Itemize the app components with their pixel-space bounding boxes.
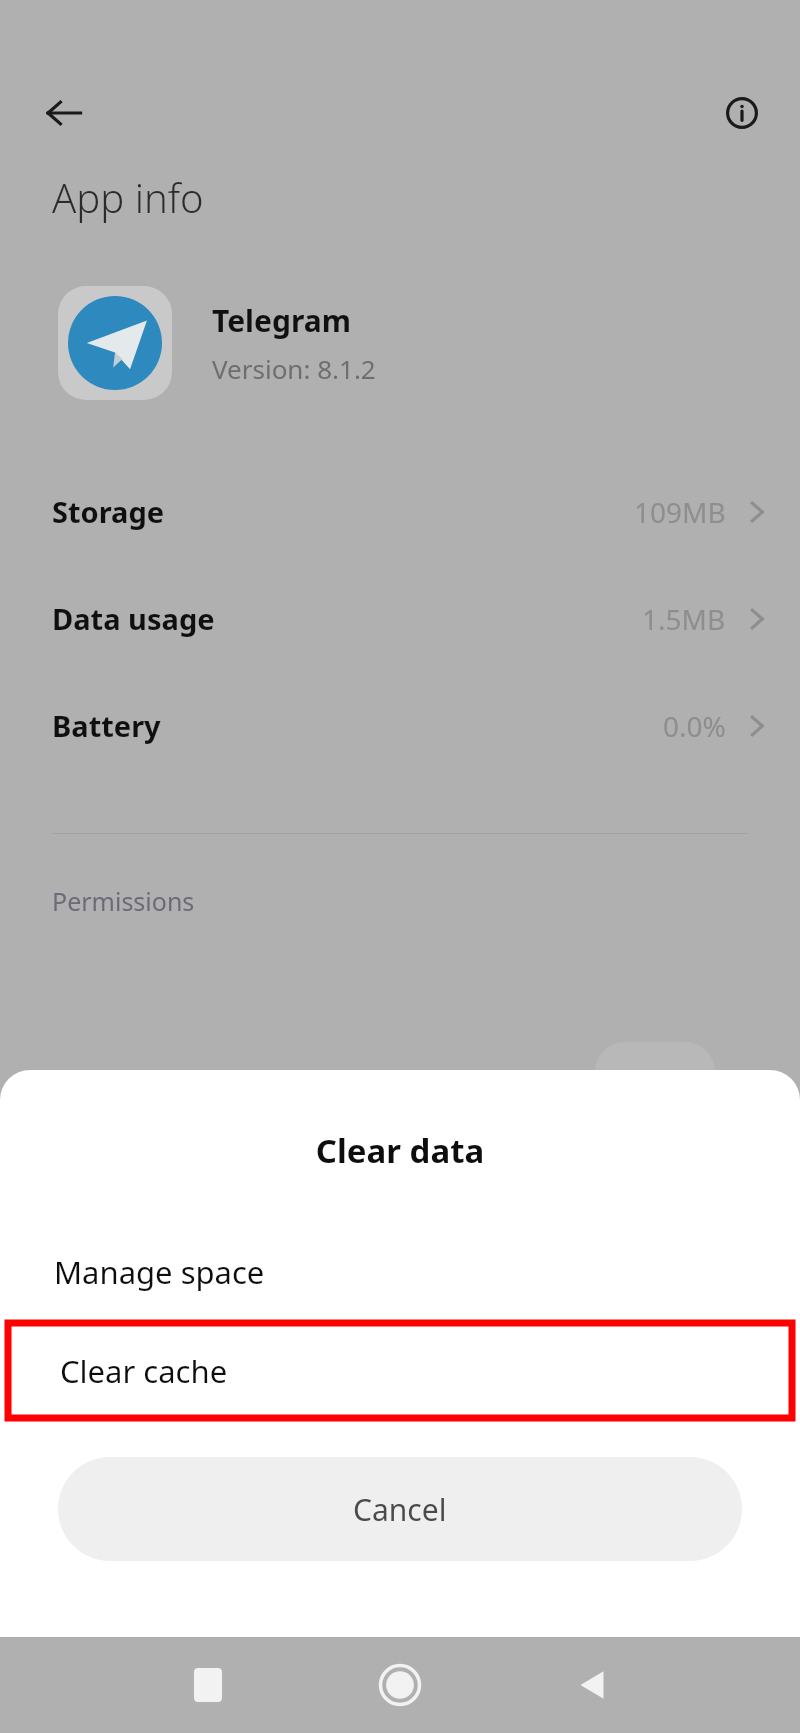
- staticText: Permissions: [52, 884, 195, 918]
- button[interactable]: Recent apps: [160, 1637, 256, 1733]
- button[interactable]: Storage: [0, 458, 800, 565]
- staticText: Cancel: [353, 1489, 447, 1530]
- staticText: Clear data: [0, 1128, 800, 1173]
- button[interactable]: Back: [544, 1637, 640, 1733]
- staticText: Version: 8.1.2: [212, 351, 376, 386]
- button[interactable]: Back: [36, 85, 92, 141]
- staticText: 109MB: [634, 493, 726, 531]
- staticText: Storage: [52, 492, 165, 531]
- staticText: 1.5MB: [642, 600, 726, 638]
- staticText: Data usage: [52, 599, 215, 638]
- staticText: Telegram: [212, 300, 351, 341]
- button[interactable]: App details info: [714, 85, 770, 141]
- button[interactable]: Clear cache: [0, 1320, 800, 1421]
- button[interactable]: Data usage: [0, 565, 800, 672]
- staticText: 0.0%: [663, 707, 726, 745]
- button[interactable]: Home: [352, 1637, 448, 1733]
- button[interactable]: Cancel: [58, 1457, 742, 1561]
- staticText: Clear cache: [60, 1350, 228, 1392]
- staticText: App info: [52, 170, 204, 224]
- button[interactable]: Manage space: [0, 1223, 800, 1320]
- staticText: Manage space: [54, 1251, 265, 1293]
- staticText: Battery: [52, 706, 161, 745]
- button[interactable]: Battery: [0, 672, 800, 779]
